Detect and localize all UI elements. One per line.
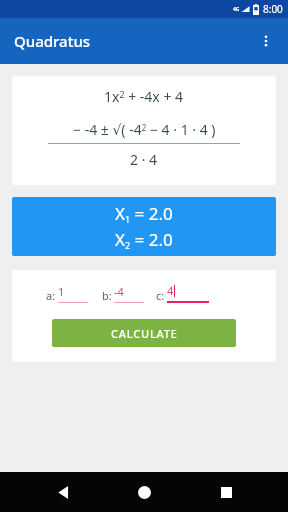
button[interactable]: Home [125,473,163,511]
staticText: Quadratus [14,31,91,51]
staticText: a: [46,288,56,303]
staticText: 1 [58,284,65,299]
staticText: -4 [114,284,124,299]
staticText: 1x2 + -4x + 4 [104,87,184,106]
staticText: 4G [233,6,240,13]
staticText: X2 = 2.0 [115,228,173,252]
staticText: 4 [167,283,174,298]
staticText: − -4 ± √( -42 − 4 · 1 · 4 ) [73,120,216,139]
button[interactable]: Recent apps [207,473,245,511]
staticText: c: [156,288,165,303]
staticText: X1 = 2.0 [115,202,173,226]
staticText: b: [102,288,112,303]
button[interactable]: More options [250,25,282,57]
button[interactable]: CALCULATE [52,319,236,347]
staticText: CALCULATE [111,326,178,341]
button[interactable]: a: [46,284,88,303]
button[interactable]: c: [156,283,209,303]
staticText: 2 · 4 [130,150,158,169]
button[interactable]: Back [44,473,82,511]
button[interactable]: b: [102,284,144,303]
staticText: 8:00 [263,2,283,16]
